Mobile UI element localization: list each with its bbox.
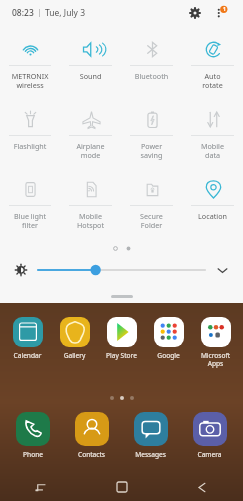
button[interactable]: Mobile Hotspot [60,170,121,240]
staticText: Flashlight [0,141,60,151]
staticText: Sound [60,71,121,81]
button[interactable]: METRONIX wireless [0,30,60,100]
button[interactable]: Calendar [4,317,51,360]
staticText: Contacts [62,450,121,459]
staticText: Messages [121,450,180,459]
button[interactable]: Bluetooth [121,30,182,100]
staticText: Tue, July 3 [45,7,86,19]
staticText: Gallery [51,351,98,360]
button[interactable]: Home [81,473,162,501]
button[interactable]: Auto rotate [182,30,243,100]
button[interactable]: Gallery [51,317,98,360]
staticText: Location [182,211,243,221]
button[interactable]: Recents [0,473,81,501]
button[interactable]: Airplane mode [60,100,121,170]
staticText: Auto rotate [182,71,243,90]
button[interactable]: Phone [4,412,62,459]
staticText: Microsoft Apps [192,351,239,368]
staticText: Play Store [98,351,145,360]
button[interactable]: Power saving [121,100,182,170]
button[interactable]: Settings [185,3,205,23]
staticText: Calendar [4,351,51,360]
staticText: Power saving [121,141,182,160]
button[interactable]: Play Store [98,317,145,360]
staticText: Mobile data [182,141,243,160]
button[interactable]: More options [211,3,231,23]
staticText: Phone [4,450,62,459]
button[interactable]: Messages [121,412,180,459]
staticText: 08:23 [12,7,34,19]
button[interactable]: Brightness [12,261,30,279]
button[interactable]: Google [145,317,192,360]
button[interactable]: Sound [60,30,121,100]
staticText: Google [145,351,192,360]
button[interactable]: Blue light filter [0,170,60,240]
button[interactable] [38,261,205,279]
staticText: Blue light filter [0,211,60,230]
staticText: Secure Folder [121,211,182,230]
button[interactable]: Mobile data [182,100,243,170]
button[interactable]: Microsoft Apps [192,317,239,368]
button[interactable]: Secure Folder [121,170,182,240]
staticText: Bluetooth [121,71,182,81]
button[interactable]: Contacts [62,412,121,459]
staticText: Camera [180,450,239,459]
button[interactable]: Flashlight [0,100,60,170]
button[interactable]: Back [162,473,243,501]
button[interactable]: Expand brightness [213,261,231,279]
button[interactable]: Location [182,170,243,240]
staticText: 1 [223,6,226,13]
staticText: Airplane mode [60,141,121,160]
staticText: Mobile Hotspot [60,211,121,230]
button[interactable]: Camera [180,412,239,459]
staticText: METRONIX wireless [0,71,60,90]
